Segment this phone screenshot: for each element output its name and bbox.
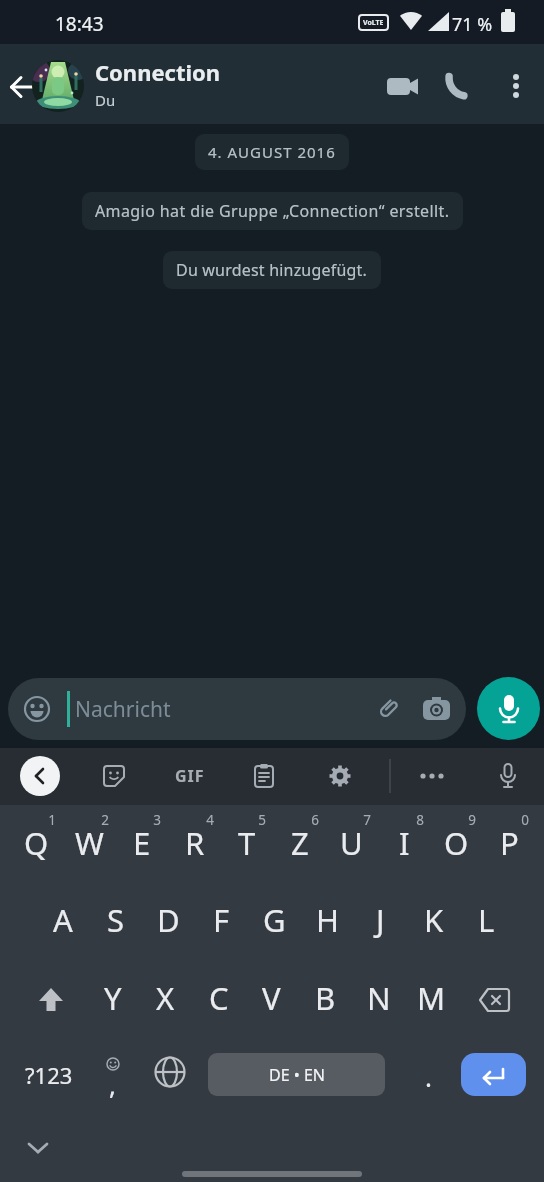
- button[interactable]: [13, 1127, 63, 1167]
- staticText: Z: [291, 822, 309, 864]
- staticText: 8: [409, 811, 431, 829]
- button[interactable]: J: [354, 883, 407, 957]
- staticText: 6: [304, 811, 326, 829]
- staticText: 4: [199, 811, 221, 829]
- button[interactable]: U: [325, 806, 378, 880]
- button[interactable]: N: [352, 961, 405, 1035]
- button[interactable]: A: [36, 883, 89, 957]
- staticText: Y: [104, 977, 122, 1019]
- staticText: Nachricht: [75, 695, 171, 724]
- button[interactable]: F: [195, 883, 248, 957]
- button[interactable]: [437, 62, 485, 110]
- staticText: N: [367, 977, 391, 1019]
- staticText: I: [399, 822, 410, 864]
- button[interactable]: B: [299, 961, 352, 1035]
- staticText: M: [417, 977, 446, 1019]
- button[interactable]: [477, 677, 540, 740]
- staticText: L: [478, 899, 495, 941]
- button[interactable]: [11, 965, 91, 1035]
- staticText: X: [156, 977, 175, 1019]
- staticText: O: [444, 822, 469, 864]
- button[interactable]: M: [405, 961, 458, 1035]
- staticText: E: [133, 822, 151, 864]
- button[interactable]: [408, 752, 456, 800]
- staticText: A: [53, 899, 73, 941]
- staticText: Amagio hat die Gruppe „Connection“ erste…: [95, 200, 450, 222]
- staticText: 4. AUGUST 2016: [208, 142, 336, 162]
- button[interactable]: D: [142, 883, 195, 957]
- staticText: T: [238, 822, 256, 864]
- button[interactable]: .: [401, 1037, 455, 1107]
- button[interactable]: T: [220, 806, 273, 880]
- staticText: 71 %: [452, 12, 493, 37]
- staticText: G: [263, 899, 286, 941]
- button[interactable]: S: [89, 883, 142, 957]
- staticText: 0: [514, 811, 536, 829]
- button[interactable]: Q: [10, 806, 63, 880]
- staticText: GIF: [175, 765, 205, 787]
- staticText: B: [315, 977, 336, 1019]
- staticText: 7: [356, 811, 378, 829]
- staticText: R: [185, 822, 205, 864]
- staticText: 3: [146, 811, 168, 829]
- staticText: ,: [109, 1067, 116, 1102]
- staticText: .: [425, 1059, 432, 1094]
- button[interactable]: P: [483, 806, 536, 880]
- staticText: 1: [41, 811, 63, 829]
- button[interactable]: I: [378, 806, 431, 880]
- button[interactable]: [379, 62, 427, 110]
- staticText: W: [75, 822, 104, 864]
- button[interactable]: [143, 1037, 197, 1107]
- staticText: VoLTE: [363, 18, 384, 28]
- staticText: 2: [94, 811, 116, 829]
- staticText: K: [424, 899, 444, 941]
- staticText: S: [107, 899, 125, 941]
- button[interactable]: [90, 752, 138, 800]
- button[interactable]: G: [248, 883, 301, 957]
- staticText: V: [262, 977, 281, 1019]
- staticText: U: [340, 822, 363, 864]
- staticText: Connection: [95, 57, 221, 87]
- button[interactable]: [32, 60, 84, 112]
- button[interactable]: GIF: [164, 752, 216, 800]
- button[interactable]: [240, 752, 288, 800]
- button[interactable]: Y: [86, 961, 139, 1035]
- button[interactable]: Nachricht: [8, 678, 466, 740]
- staticText: C: [209, 977, 229, 1019]
- staticText: F: [213, 899, 230, 941]
- staticText: 9: [461, 811, 483, 829]
- button[interactable]: [496, 62, 536, 110]
- staticText: Du: [95, 90, 116, 110]
- button[interactable]: R: [168, 806, 221, 880]
- button[interactable]: Z: [273, 806, 326, 880]
- button[interactable]: O: [430, 806, 483, 880]
- button[interactable]: K: [407, 883, 460, 957]
- staticText: 5: [251, 811, 273, 829]
- staticText: H: [316, 899, 339, 941]
- button[interactable]: W: [63, 806, 116, 880]
- button[interactable]: L: [460, 883, 513, 957]
- staticText: 18:43: [55, 11, 104, 37]
- staticText: Du wurdest hinzugefügt.: [176, 259, 368, 281]
- staticText: DE • EN: [269, 1064, 325, 1086]
- button[interactable]: [454, 965, 534, 1035]
- button[interactable]: [484, 752, 532, 800]
- button[interactable]: V: [245, 961, 298, 1035]
- button[interactable]: C: [192, 961, 245, 1035]
- button[interactable]: [20, 756, 60, 796]
- staticText: ?123: [25, 1060, 73, 1090]
- button[interactable]: [2, 65, 42, 109]
- button[interactable]: E: [115, 806, 168, 880]
- staticText: Q: [24, 822, 49, 864]
- staticText: P: [500, 822, 519, 864]
- button[interactable]: H: [301, 883, 354, 957]
- staticText: D: [157, 899, 180, 941]
- button[interactable]: [316, 752, 364, 800]
- button[interactable]: Connection: [95, 57, 221, 110]
- button[interactable]: X: [139, 961, 192, 1035]
- button[interactable]: [461, 1053, 526, 1096]
- button[interactable]: DE • EN: [208, 1053, 385, 1096]
- button[interactable]: ?123: [7, 1040, 91, 1110]
- button[interactable]: ,: [88, 1037, 138, 1107]
- staticText: J: [376, 899, 385, 941]
